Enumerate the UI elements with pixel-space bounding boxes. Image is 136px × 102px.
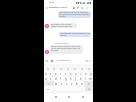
staticText: Benjamin Manag: [55, 42, 69, 44]
button[interactable]: Recent apps: [80, 94, 85, 99]
staticText: b: [76, 82, 78, 86]
staticText: e: [55, 72, 57, 76]
button[interactable]: Keyboard tool 2: [51, 66, 57, 71]
staticText: Salut Benjamin. Pas de problème, à tout …: [60, 32, 90, 36]
staticText: f: [60, 77, 61, 81]
button[interactable]: Search: [80, 6, 84, 10]
button[interactable]: o: [83, 71, 88, 76]
button[interactable]: Backspace: [84, 81, 93, 86]
button[interactable]: .: [80, 86, 85, 91]
button[interactable]: q: [44, 76, 48, 81]
button[interactable]: k: [78, 76, 83, 81]
button[interactable]: x: [59, 81, 64, 86]
staticText: Salut Patrick, tout à l'heure bientôt et…: [51, 23, 76, 27]
button[interactable]: r: [58, 71, 63, 76]
staticText: .: [82, 87, 83, 91]
button[interactable]: d: [53, 76, 58, 81]
button[interactable]: i: [78, 71, 83, 76]
staticText: j: [75, 77, 76, 81]
button[interactable]: Voice message: [88, 59, 91, 62]
staticText: x: [61, 82, 63, 86]
button[interactable]: Shift: [44, 81, 54, 86]
staticText: a: [45, 72, 47, 76]
button[interactable]: Keyboard tool 5: [71, 66, 78, 71]
button[interactable]: l: [83, 76, 88, 81]
button[interactable]: z: [48, 71, 53, 76]
button[interactable]: f: [58, 76, 63, 81]
staticText: Message texte: [57, 59, 71, 62]
button[interactable]: Video call: [72, 6, 76, 10]
button[interactable]: Emoji: [85, 59, 88, 62]
button[interactable]: j: [73, 76, 78, 81]
button[interactable]: e: [53, 71, 58, 76]
staticText: n: [81, 82, 83, 86]
button[interactable]: t: [63, 71, 68, 76]
staticText: l: [85, 77, 86, 81]
staticText: u: [75, 72, 77, 76]
button[interactable]: s: [48, 76, 53, 81]
button[interactable]: v: [69, 81, 74, 86]
staticText: i: [80, 72, 81, 76]
button[interactable]: m: [88, 76, 93, 81]
staticText: r: [60, 72, 62, 76]
button[interactable]: Enter: [85, 86, 93, 91]
button[interactable]: n: [79, 81, 84, 86]
button[interactable]: Keyboard tool 4: [64, 66, 71, 71]
button[interactable]: Back: [53, 94, 58, 99]
staticText: 14:02: [49, 1, 54, 4]
button[interactable]: ?123: [44, 86, 52, 91]
button[interactable]: w: [54, 81, 59, 86]
staticText: w: [55, 82, 58, 86]
button[interactable]: y: [68, 71, 73, 76]
button[interactable]: Call: [76, 6, 80, 10]
button[interactable]: Add: [45, 59, 49, 63]
button[interactable]: Home: [66, 94, 71, 99]
button[interactable]: c: [64, 81, 69, 86]
button[interactable]: Message texte: [57, 58, 85, 63]
staticText: q: [45, 77, 47, 81]
button[interactable]: a: [44, 71, 48, 76]
staticText: m: [89, 77, 92, 81]
staticText: v: [71, 82, 73, 86]
button[interactable]: Salut Benjamin. Pas de problème, à tout …: [59, 32, 91, 37]
button[interactable]: u: [73, 71, 78, 76]
button[interactable]: Keyboard tool 6: [78, 66, 85, 71]
staticText: z: [50, 72, 52, 76]
button[interactable]: h: [68, 76, 73, 81]
button[interactable]: Back: [45, 6, 49, 10]
staticText: d: [55, 77, 57, 81]
button[interactable]: Keyboard tool 7: [85, 66, 92, 71]
button[interactable]: More options: [85, 6, 89, 10]
staticText: g: [65, 77, 67, 81]
staticText: o: [85, 72, 87, 76]
button[interactable]: p: [88, 71, 93, 76]
staticText: ,: [54, 87, 55, 91]
button[interactable]: g: [63, 76, 68, 81]
button[interactable]: Bonjour à Rejoin comment qu'on sortie. C…: [50, 45, 83, 54]
staticText: k: [80, 77, 82, 81]
staticText: Benjamin Manag: [49, 6, 67, 9]
button[interactable]: Keyboard tool 1: [45, 66, 51, 71]
staticText: c: [66, 82, 68, 86]
staticText: Bonjour à Rejoin comment qu'on sortie. C…: [51, 45, 82, 51]
staticText: y: [70, 72, 72, 76]
staticText: t: [65, 72, 66, 76]
button[interactable]: ,: [52, 86, 57, 91]
staticText: s: [50, 77, 52, 81]
button[interactable]: Super merci! Pas de soucis, comme l'on e…: [58, 11, 91, 18]
staticText: h: [70, 77, 72, 81]
staticText: p: [90, 72, 92, 76]
button[interactable]: Salut Patrick, tout à l'heure bientôt et…: [50, 23, 77, 28]
staticText: ?123: [46, 88, 50, 90]
button[interactable]: b: [74, 81, 79, 86]
button[interactable]: Camera: [50, 59, 54, 63]
button[interactable]: Keyboard tool 3: [57, 66, 64, 71]
staticText: Super merci! Pas de soucis, comme l'on e…: [59, 11, 90, 17]
